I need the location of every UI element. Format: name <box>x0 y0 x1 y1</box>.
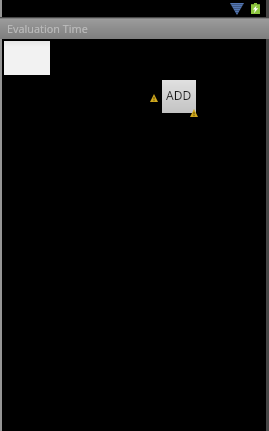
other: Battery charging <box>251 3 260 14</box>
staticText: Evaluation Time <box>7 21 88 36</box>
other: Download <box>230 3 244 15</box>
staticText: ADD <box>166 87 192 103</box>
button[interactable]: ADD <box>162 80 196 113</box>
